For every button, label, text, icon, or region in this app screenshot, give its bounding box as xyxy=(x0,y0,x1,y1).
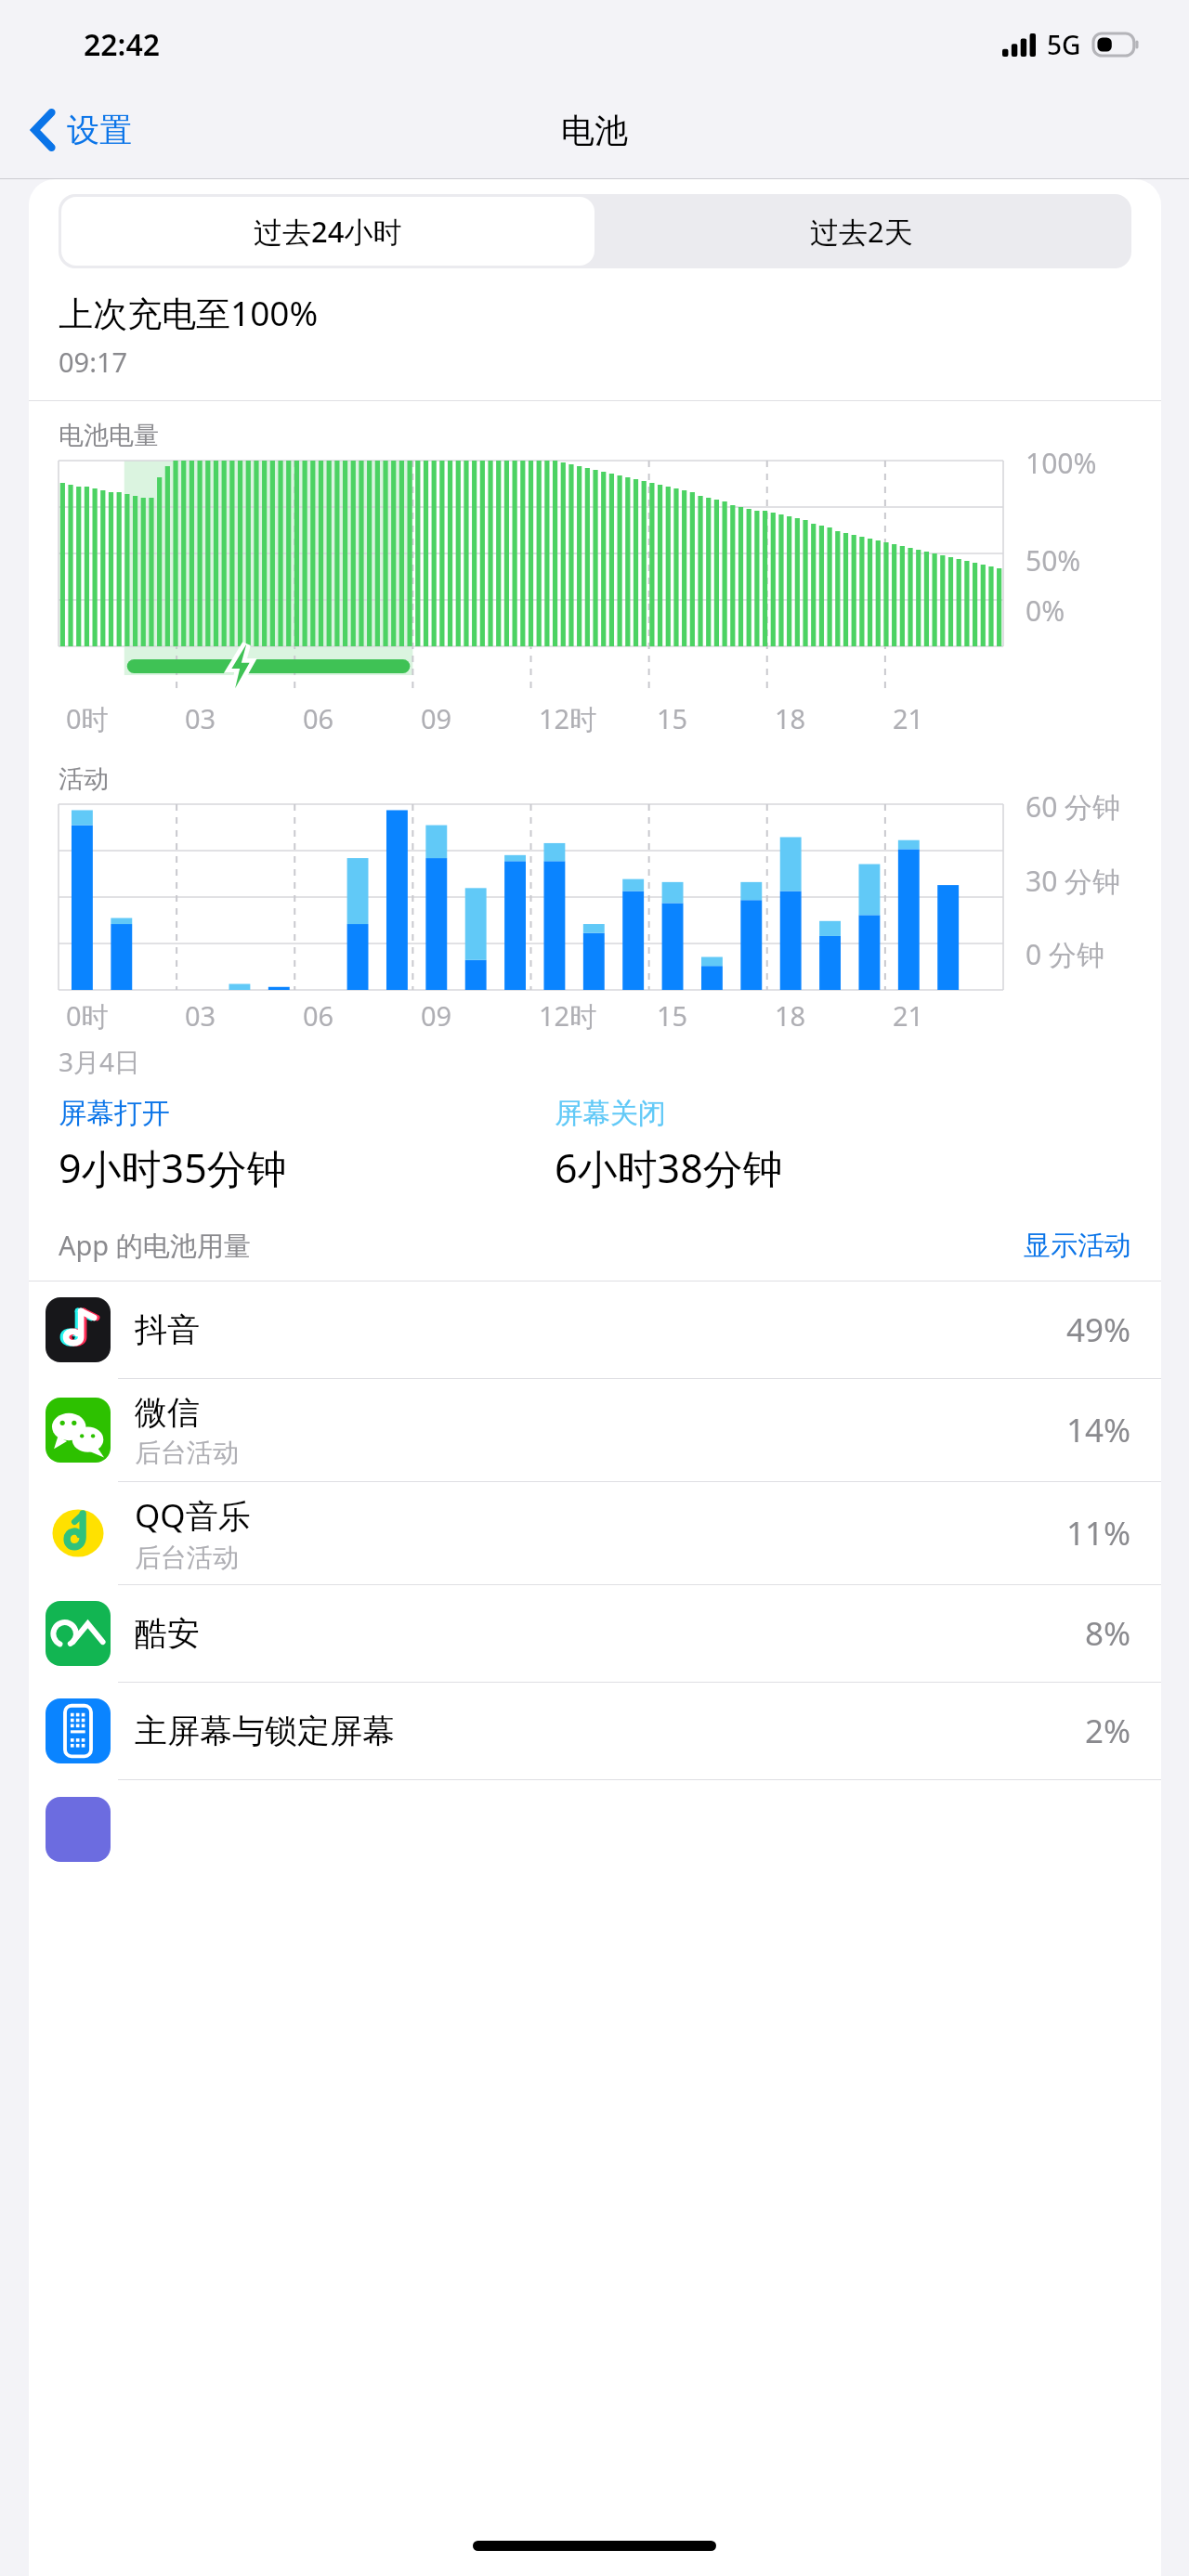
staticText: 12时 xyxy=(539,997,597,1034)
button[interactable]: 微信 xyxy=(29,1379,1161,1481)
staticText: 2% xyxy=(1085,1709,1131,1753)
staticText: 03 xyxy=(185,700,216,736)
other: 主屏幕与锁定屏幕 xyxy=(46,1698,111,1763)
staticText: 后台活动 xyxy=(135,1437,239,1469)
button[interactable]: QQ音乐 xyxy=(29,1482,1161,1584)
staticText: 屏幕关闭 xyxy=(555,1096,666,1131)
staticText: 50% xyxy=(1026,541,1081,579)
staticText: 12时 xyxy=(539,700,597,737)
staticText: 后台活动 xyxy=(135,1542,239,1574)
button[interactable]: 过去2天 xyxy=(594,197,1129,266)
staticText: 屏幕打开 xyxy=(59,1096,170,1131)
staticText: 15 xyxy=(657,997,688,1034)
staticText: 0时 xyxy=(66,997,109,1034)
staticText: 5G xyxy=(1047,27,1081,62)
staticText: 活动 xyxy=(59,763,109,795)
button[interactable]: 抖音 xyxy=(29,1281,1161,1378)
staticText: 06 xyxy=(303,997,334,1034)
button[interactable]: 设置 xyxy=(22,102,141,158)
staticText: 抖音 xyxy=(135,1309,200,1350)
other: QQ音乐 xyxy=(48,1503,108,1563)
button[interactable]: 酷安 xyxy=(29,1585,1161,1682)
other: 微信 xyxy=(46,1398,111,1463)
staticText: 设置 xyxy=(67,110,132,150)
staticText: 15 xyxy=(657,700,688,736)
staticText: 0时 xyxy=(66,700,109,737)
staticText: 0% xyxy=(1026,592,1065,630)
staticText: 14% xyxy=(1066,1408,1131,1452)
staticText: 8% xyxy=(1085,1611,1131,1656)
staticText: 06 xyxy=(303,700,334,736)
staticText: 显示活动 xyxy=(1024,1229,1131,1263)
staticText: 21 xyxy=(893,700,924,736)
staticText: 过去2天 xyxy=(810,212,913,251)
staticText: 18 xyxy=(775,700,806,736)
other: 酷安 xyxy=(46,1601,111,1666)
staticText: 电池 xyxy=(561,110,628,151)
other: 抖音 xyxy=(46,1297,111,1362)
staticText: 09 xyxy=(421,997,452,1034)
staticText: 03 xyxy=(185,997,216,1034)
staticText: 21 xyxy=(893,997,924,1034)
staticText: 49% xyxy=(1066,1308,1131,1352)
staticText: 微信 xyxy=(135,1392,200,1433)
button[interactable]: 显示活动 xyxy=(1024,1229,1131,1263)
staticText: 11% xyxy=(1066,1511,1131,1555)
staticText: 电池电量 xyxy=(59,420,159,451)
staticText: App 的电池用量 xyxy=(59,1227,251,1264)
staticText: 09:17 xyxy=(59,344,128,380)
staticText: 过去24小时 xyxy=(254,212,402,251)
staticText: 09 xyxy=(421,700,452,736)
staticText: 主屏幕与锁定屏幕 xyxy=(135,1711,395,1751)
staticText: 60 分钟 xyxy=(1026,787,1121,826)
button[interactable]: 主屏幕与锁定屏幕 xyxy=(29,1683,1161,1779)
staticText: 0 分钟 xyxy=(1026,935,1104,973)
staticText: 酷安 xyxy=(135,1613,200,1654)
staticText: 100% xyxy=(1026,444,1097,482)
staticText: 18 xyxy=(775,997,806,1034)
staticText: 6小时38分钟 xyxy=(555,1140,783,1195)
staticText: 3月4日 xyxy=(59,1044,141,1079)
staticText: 9小时35分钟 xyxy=(59,1140,287,1195)
staticText: 上次充电至100% xyxy=(59,289,319,336)
staticText: 30 分钟 xyxy=(1026,862,1121,900)
button[interactable]: 过去24小时 xyxy=(61,197,594,266)
staticText: 22:42 xyxy=(84,24,161,65)
staticText: QQ音乐 xyxy=(135,1493,251,1538)
